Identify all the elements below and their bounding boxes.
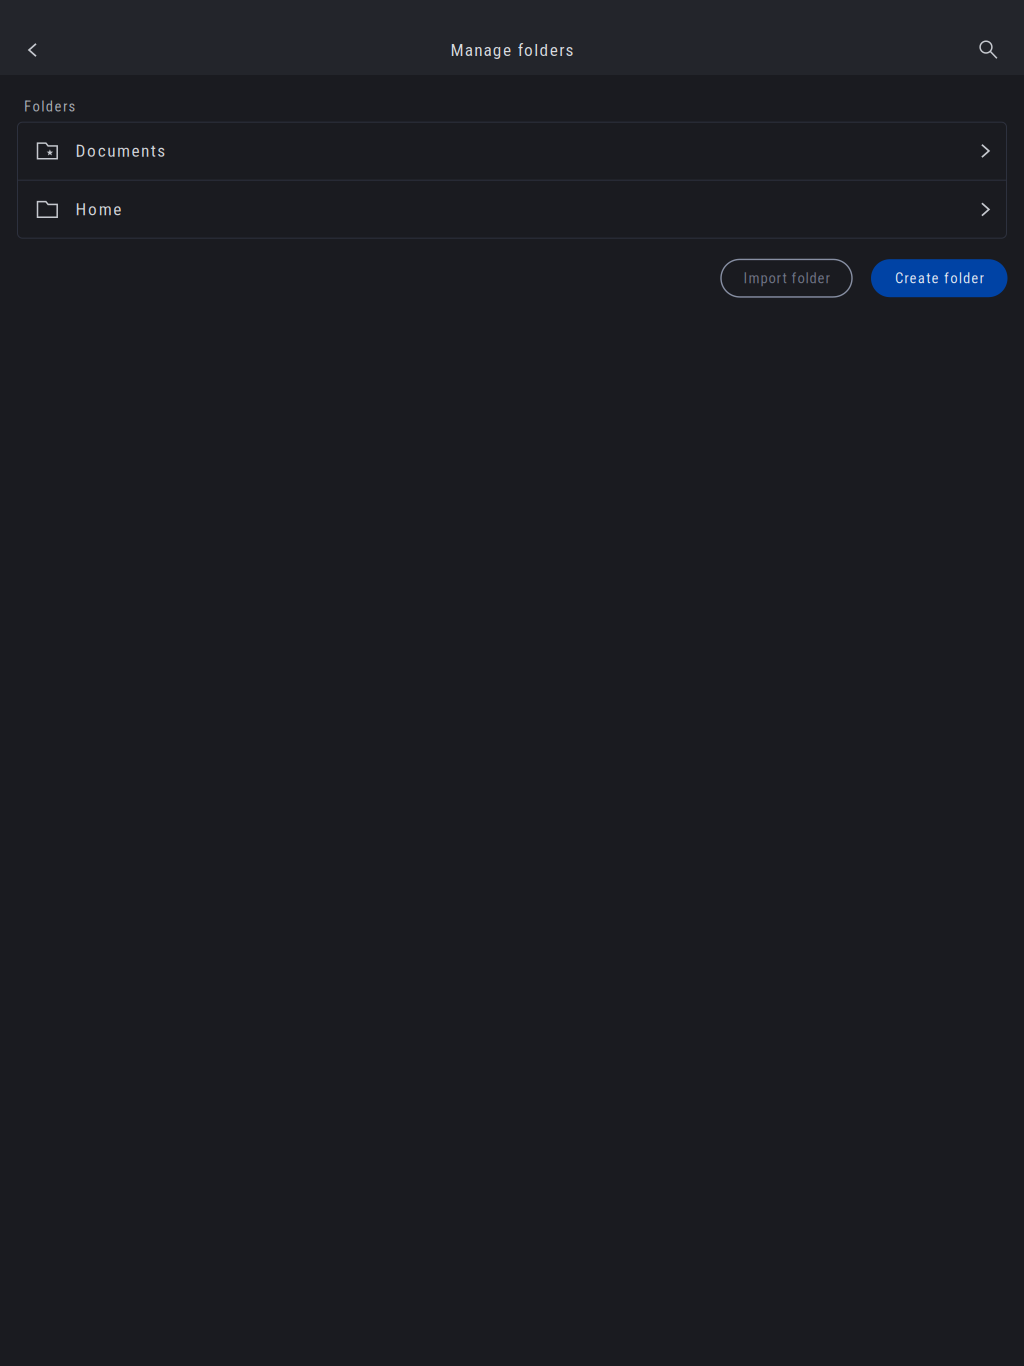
staticText: Import folder [743,270,829,287]
button[interactable]: Import folder [721,259,852,297]
button[interactable]: Back [10,28,54,72]
button[interactable]: Search [967,28,1011,72]
staticText: Documents [75,141,165,161]
staticText: Create folder [895,270,984,287]
button[interactable]: Documents [17,122,1006,180]
staticText: Home [75,199,121,220]
staticText: Manage folders [451,40,573,60]
button[interactable]: Home [17,181,1006,238]
button[interactable]: Create folder [871,259,1007,297]
staticText: Folders [24,98,76,115]
